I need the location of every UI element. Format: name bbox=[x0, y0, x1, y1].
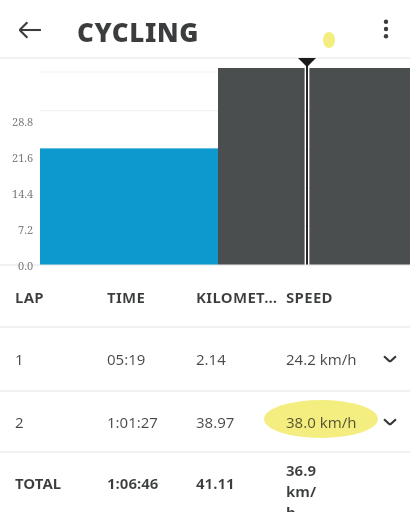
staticText: 1:06:46 bbox=[107, 473, 159, 493]
button[interactable]: Back bbox=[10, 10, 50, 50]
staticText: TOTAL bbox=[15, 473, 62, 493]
staticText: 1 bbox=[15, 349, 24, 369]
staticText: 2 bbox=[15, 412, 24, 432]
staticText: 0.0 bbox=[18, 258, 34, 273]
staticText: 38.0 km/h bbox=[286, 412, 357, 432]
staticText: 7.2 bbox=[18, 222, 34, 237]
staticText: 21.6 bbox=[12, 150, 34, 165]
staticText: 36.9 km/ h bbox=[286, 460, 344, 512]
staticText: 41.11 bbox=[196, 473, 235, 493]
button[interactable]: 2 bbox=[0, 391, 410, 452]
staticText: SPEED bbox=[286, 287, 333, 307]
staticText: KILOMET… bbox=[196, 287, 278, 307]
staticText: 38.97 bbox=[196, 412, 235, 432]
staticText: 24.2 km/h bbox=[286, 349, 357, 369]
staticText: 05:19 bbox=[107, 349, 146, 369]
staticText: 2.14 bbox=[196, 349, 226, 369]
staticText: 14.4 bbox=[12, 186, 34, 201]
button[interactable]: More options bbox=[366, 9, 406, 49]
staticText: 28.8 bbox=[12, 114, 34, 129]
staticText: LAP bbox=[15, 287, 44, 307]
staticText: 1:01:27 bbox=[107, 412, 158, 432]
button[interactable]: TOTAL bbox=[0, 453, 410, 512]
staticText: CYCLING bbox=[77, 14, 200, 49]
button[interactable]: 1 bbox=[0, 327, 410, 391]
staticText: TIME bbox=[107, 287, 146, 307]
